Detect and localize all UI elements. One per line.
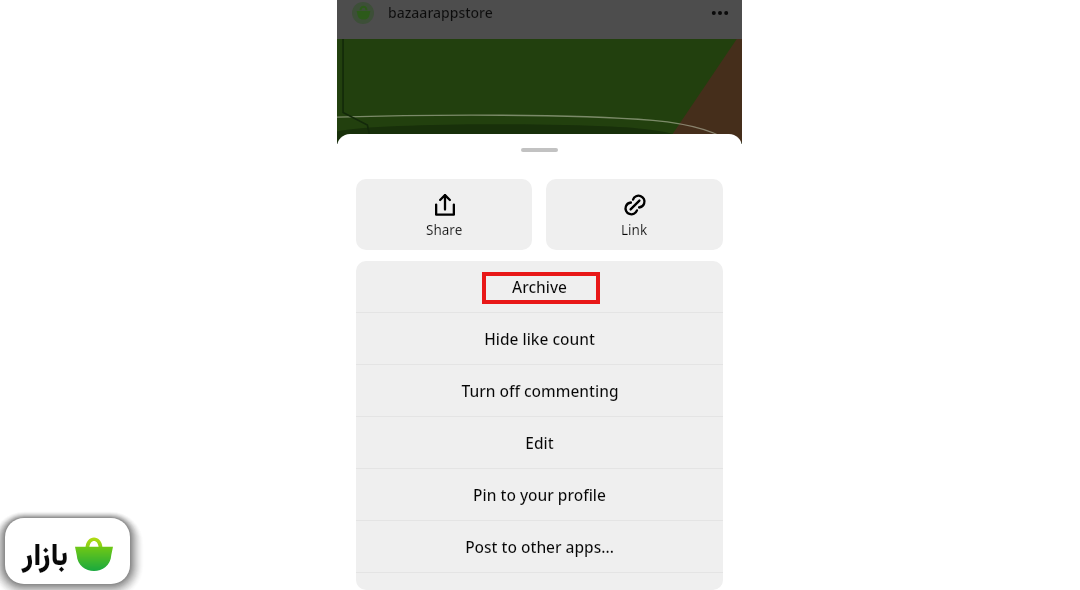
staticText: Link xyxy=(621,221,648,239)
button[interactable]: Pin to your profile xyxy=(356,469,723,520)
button[interactable]: More options xyxy=(707,0,733,26)
button[interactable]: bazaarappstore xyxy=(388,2,493,24)
staticText: Pin to your profile xyxy=(473,484,606,505)
staticText: bazaarappstore xyxy=(388,3,493,22)
button[interactable]: Post to other apps... xyxy=(356,521,723,572)
button[interactable]: Turn off commenting xyxy=(356,365,723,416)
staticText: Turn off commenting xyxy=(461,380,619,401)
button[interactable]: Bazaar app store xyxy=(5,518,130,584)
staticText: Archive xyxy=(512,276,567,297)
staticText: Hide like count xyxy=(484,328,595,349)
button[interactable]: Link xyxy=(546,179,723,250)
staticText: Share xyxy=(426,221,463,239)
button[interactable]: Profile picture, bazaarappstore xyxy=(352,2,374,24)
button[interactable]: Hide like count xyxy=(356,313,723,364)
button[interactable]: Archive xyxy=(356,261,723,312)
staticText: Edit xyxy=(525,432,554,453)
staticText: بازار xyxy=(22,534,69,581)
button[interactable]: Share xyxy=(356,179,532,250)
button[interactable]: Edit xyxy=(356,417,723,468)
staticText: Post to other apps... xyxy=(465,536,614,557)
